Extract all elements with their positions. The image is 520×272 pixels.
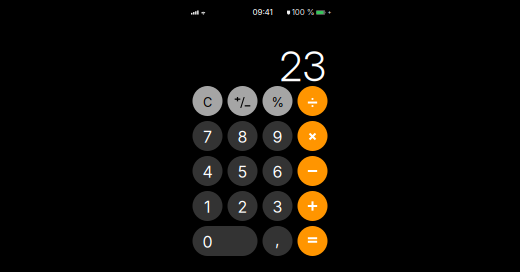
staticText: 4 <box>202 162 212 182</box>
staticText: 2 <box>237 197 247 217</box>
button[interactable]: 5 <box>227 156 257 186</box>
button[interactable]: 3 <box>262 191 292 221</box>
button[interactable]: Plus <box>297 191 327 221</box>
staticText: 23 <box>279 42 326 91</box>
button[interactable]: Plus minus <box>227 86 257 116</box>
button[interactable]: 7 <box>192 121 222 151</box>
staticText: 8 <box>237 127 247 147</box>
staticText: + <box>328 8 332 16</box>
button[interactable]: 8 <box>227 121 257 151</box>
button[interactable]: Minus <box>297 156 327 186</box>
staticText: 1 <box>204 197 211 217</box>
staticText: 7 <box>203 127 212 147</box>
staticText: , <box>275 230 280 249</box>
button[interactable]: 6 <box>262 156 292 186</box>
staticText: 9 <box>272 127 282 147</box>
button[interactable]: 1 <box>192 191 222 221</box>
button[interactable]: Percent <box>262 86 292 116</box>
button[interactable]: Decimal separator <box>262 226 292 256</box>
staticText: C <box>203 95 212 110</box>
staticText: 09:41 <box>252 7 272 17</box>
button[interactable]: Multiply <box>297 121 327 151</box>
button[interactable]: Divide <box>297 86 327 116</box>
button[interactable]: Equals <box>297 226 327 256</box>
staticText: 3 <box>272 197 282 217</box>
staticText: 5 <box>237 162 247 182</box>
staticText: % <box>271 95 283 110</box>
button[interactable]: 9 <box>262 121 292 151</box>
button[interactable]: Clear <box>192 86 222 116</box>
staticText: 6 <box>272 162 282 182</box>
button[interactable]: 4 <box>192 156 222 186</box>
button[interactable]: 0 <box>192 226 257 256</box>
staticText: 100 % <box>292 7 315 17</box>
staticText: 0 <box>202 232 212 252</box>
button[interactable]: 2 <box>227 191 257 221</box>
